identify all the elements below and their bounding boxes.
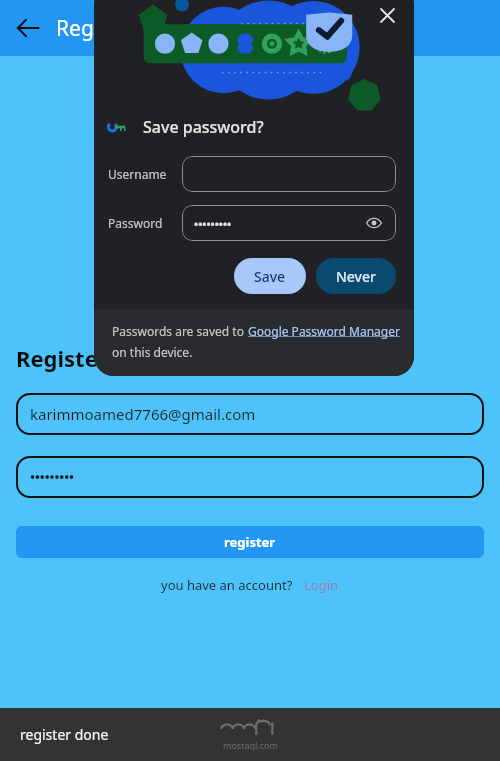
staticText: you have an account? — [161, 576, 293, 594]
staticText: Save — [254, 267, 286, 286]
staticText: mostaql.com — [223, 739, 278, 751]
staticText: register — [224, 533, 276, 551]
button[interactable]: ••••••••• — [16, 456, 484, 498]
button[interactable]: Never — [316, 258, 396, 294]
button[interactable] — [182, 156, 396, 192]
staticText: Register — [16, 343, 108, 373]
staticText: Passwords are saved to — [112, 323, 248, 339]
button[interactable]: Close — [370, 0, 404, 32]
staticText: Password — [108, 215, 163, 231]
button[interactable]: Show password — [364, 213, 384, 233]
button[interactable]: Login — [304, 576, 339, 594]
staticText: ••••••••• — [30, 468, 74, 486]
staticText: karimmoamed7766@gmail.com — [30, 404, 256, 424]
staticText: register done — [20, 725, 109, 744]
staticText: ••••••••• — [194, 216, 232, 231]
staticText: Save password? — [143, 116, 264, 138]
staticText: Username — [108, 166, 167, 182]
button[interactable]: Back — [0, 0, 56, 56]
button[interactable]: register — [16, 526, 484, 558]
staticText: on this device. — [112, 344, 193, 360]
button[interactable]: ••••••••• — [182, 205, 396, 241]
staticText: Register — [56, 14, 138, 43]
button[interactable]: Save — [234, 258, 306, 294]
button[interactable]: karimmoamed7766@gmail.com — [16, 393, 484, 435]
staticText: Login — [304, 576, 339, 594]
staticText: Never — [336, 267, 376, 286]
staticText: Google Password Manager — [248, 323, 400, 339]
button[interactable]: Google Password Manager — [248, 323, 400, 339]
